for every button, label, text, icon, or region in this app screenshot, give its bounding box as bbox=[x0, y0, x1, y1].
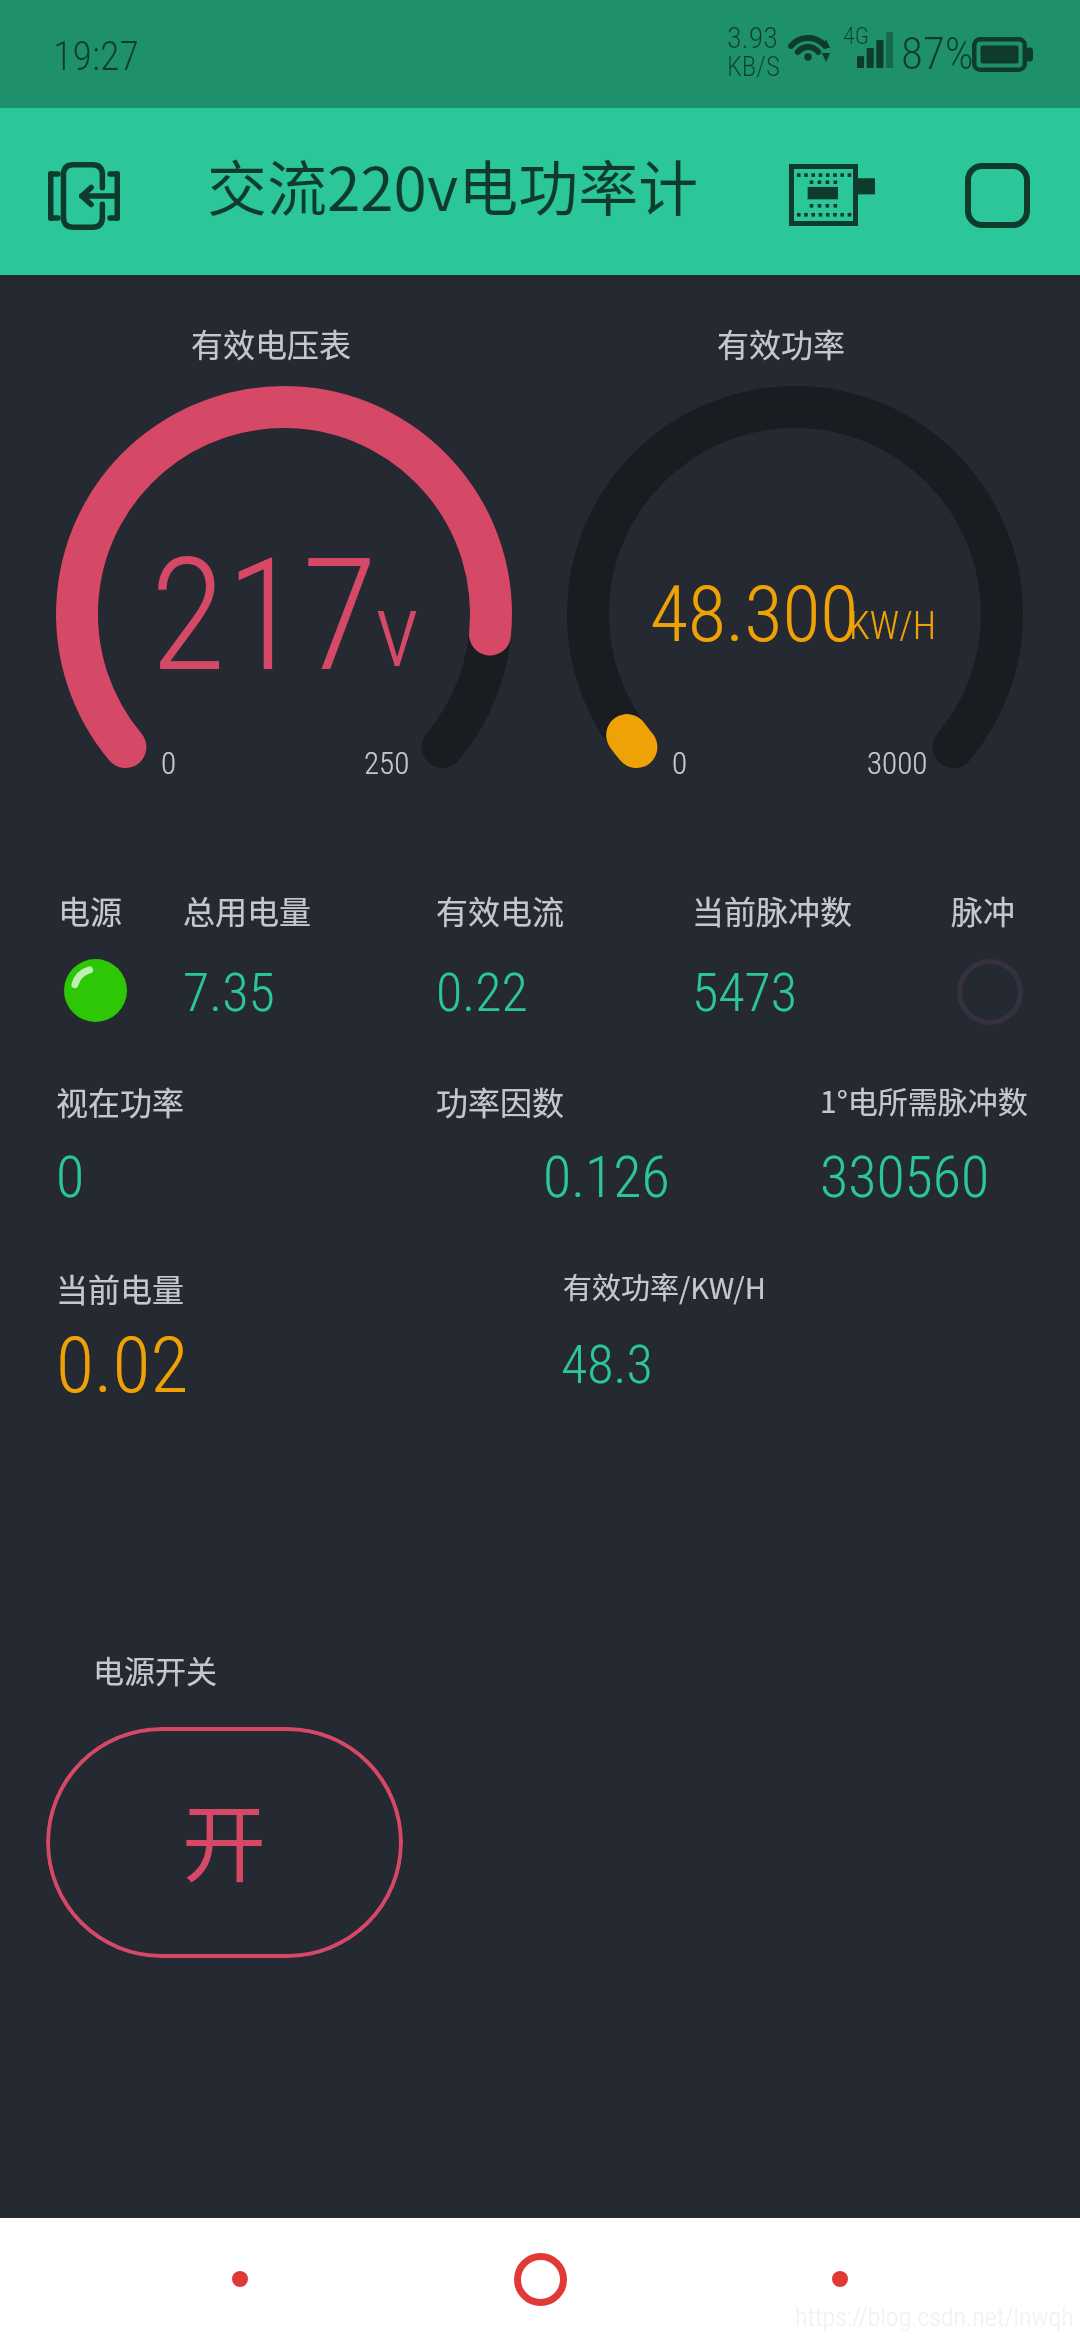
staticText: 0 bbox=[56, 1143, 85, 1211]
staticText: 48.3 bbox=[561, 1333, 653, 1396]
staticText: https://blog.csdn.net/lnwqh bbox=[795, 2302, 1074, 2332]
staticText: 有效电压表 bbox=[191, 320, 352, 366]
staticText: 0 bbox=[672, 745, 688, 781]
staticText: 0.02 bbox=[56, 1320, 189, 1411]
button[interactable]: 开 bbox=[46, 1727, 403, 1958]
staticText: 有效电流 bbox=[436, 887, 565, 933]
staticText: 脉冲 bbox=[951, 887, 1016, 933]
staticText: 330560 bbox=[820, 1143, 990, 1211]
staticText: 48.300 bbox=[650, 569, 859, 660]
staticText: 电源开关 bbox=[93, 1647, 217, 1692]
staticText: 有效功率/KW/H bbox=[563, 1265, 766, 1307]
staticText: 当前电量 bbox=[56, 1265, 185, 1311]
staticText: 开 bbox=[182, 1778, 267, 1900]
staticText: 3.93 bbox=[727, 20, 778, 55]
staticText: v bbox=[375, 570, 420, 692]
button[interactable]: Recent apps bbox=[180, 2218, 300, 2340]
staticText: 功率因数 bbox=[436, 1078, 565, 1124]
staticText: 0 bbox=[161, 745, 177, 781]
staticText: 7.35 bbox=[183, 961, 275, 1024]
staticText: KB/S bbox=[727, 51, 780, 83]
staticText: 当前脉冲数 bbox=[692, 887, 853, 933]
staticText: 有效功率 bbox=[717, 320, 846, 366]
staticText: 87% bbox=[901, 27, 974, 80]
staticText: 0.22 bbox=[436, 961, 528, 1024]
staticText: 0.126 bbox=[543, 1143, 670, 1211]
staticText: 总用电量 bbox=[183, 887, 312, 933]
staticText: 250 bbox=[364, 745, 410, 781]
staticText: 4G bbox=[843, 22, 869, 50]
button[interactable]: Overview bbox=[947, 145, 1047, 245]
button[interactable]: Home bbox=[480, 2218, 600, 2340]
staticText: 1°电所需脉冲数 bbox=[820, 1078, 1028, 1121]
button[interactable]: Back bbox=[780, 2218, 900, 2340]
staticText: 视在功率 bbox=[56, 1078, 185, 1124]
button[interactable]: Back bbox=[26, 112, 142, 279]
button[interactable]: Device board bbox=[774, 145, 900, 245]
staticText: 217 bbox=[150, 524, 378, 707]
staticText: KW/H bbox=[849, 604, 937, 649]
staticText: 19:27 bbox=[53, 33, 139, 80]
staticText: 5473 bbox=[692, 961, 798, 1024]
staticText: 交流220v电功率计 bbox=[207, 141, 699, 228]
staticText: 电源 bbox=[58, 887, 123, 933]
staticText: 3000 bbox=[867, 745, 928, 781]
